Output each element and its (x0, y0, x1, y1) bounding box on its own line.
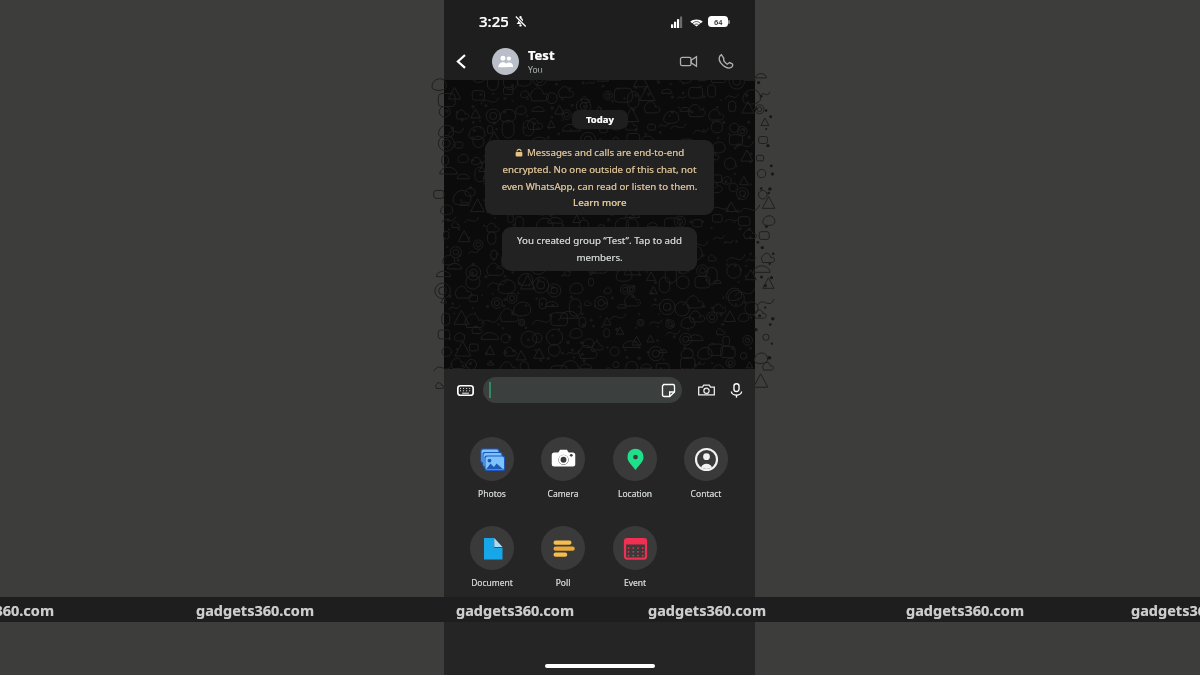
button[interactable]: Document (456, 526, 528, 589)
staticText: 64 (714, 17, 723, 27)
staticText: 3:25 (479, 11, 509, 31)
staticText: You created group “Test”. Tap to add mem… (512, 234, 687, 264)
button[interactable]: Keyboard (455, 380, 475, 400)
button[interactable]: Contact (670, 437, 742, 500)
staticText: Messages and calls are end-to-end encryp… (493, 146, 706, 193)
button[interactable]: Voice call (709, 45, 741, 77)
button[interactable]: Location (599, 437, 671, 500)
staticText: Photos (456, 488, 528, 500)
button[interactable]: Voice message (724, 378, 748, 402)
staticText: gadgets360.com (648, 600, 767, 620)
staticText: gadgets360.com (196, 600, 315, 620)
staticText: Document (456, 577, 528, 589)
staticText: You (528, 64, 543, 76)
staticText: Camera (527, 488, 599, 500)
button[interactable]: You created group “Test”. Tap to add mem… (512, 234, 687, 264)
button[interactable]: Poll (527, 526, 599, 589)
other: Stickers (660, 382, 676, 398)
button[interactable]: Learn more (573, 196, 627, 209)
button[interactable]: Camera (527, 437, 599, 500)
staticText: gadgets360.com (456, 600, 575, 620)
button[interactable]: Photos (456, 437, 528, 500)
staticText: Test (528, 46, 555, 64)
staticText: Location (599, 488, 671, 500)
staticText: gadgets360.com (1131, 600, 1200, 620)
staticText: Poll (527, 577, 599, 589)
staticText: gadgets360.com (906, 600, 1025, 620)
staticText: Contact (670, 488, 742, 500)
button[interactable]: Back (446, 46, 476, 76)
staticText: gadgets360.com (0, 600, 55, 620)
button[interactable]: Video call (672, 45, 704, 77)
button[interactable]: Camera (694, 378, 718, 402)
button[interactable]: Test (492, 46, 555, 76)
button[interactable]: Event (599, 526, 671, 589)
button[interactable]: Stickers (483, 377, 682, 403)
staticText: Learn more (573, 196, 627, 209)
staticText: Event (599, 577, 671, 589)
staticText: Today (586, 113, 614, 126)
